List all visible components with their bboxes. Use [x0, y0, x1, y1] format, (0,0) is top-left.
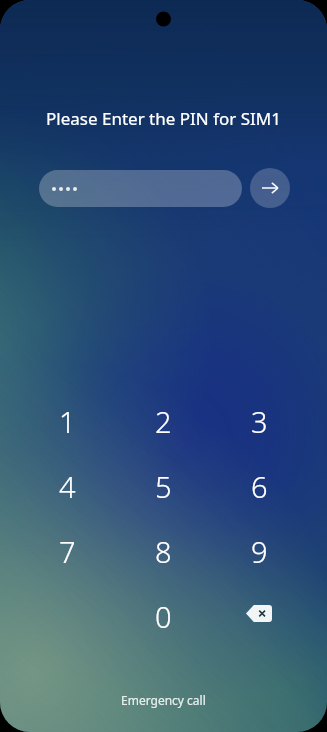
button[interactable]: 1 — [20, 402, 115, 435]
staticText: 5 — [155, 467, 172, 500]
staticText: 6 — [251, 467, 268, 500]
button[interactable] — [39, 170, 242, 207]
button[interactable]: 2 — [115, 402, 211, 435]
button[interactable]: 5 — [115, 467, 211, 500]
button[interactable]: 3 — [211, 402, 307, 435]
button[interactable]: 6 — [211, 467, 307, 500]
button[interactable]: 7 — [20, 532, 115, 565]
staticText: 0 — [155, 597, 172, 630]
staticText: 7 — [59, 532, 76, 565]
staticText: 2 — [155, 402, 172, 435]
button[interactable]: Backspace — [211, 597, 307, 630]
staticText: 3 — [251, 402, 268, 435]
staticText: 4 — [59, 467, 76, 500]
staticText: Emergency call — [121, 692, 206, 708]
button[interactable]: 8 — [115, 532, 211, 565]
button[interactable]: Emergency call — [109, 688, 218, 712]
staticText: 8 — [155, 532, 172, 565]
button[interactable]: 9 — [211, 532, 307, 565]
staticText: 9 — [251, 532, 268, 565]
staticText: 1 — [59, 402, 76, 435]
button[interactable]: 4 — [20, 467, 115, 500]
staticText: Please Enter the PIN for SIM1 — [0, 107, 327, 130]
button[interactable]: 0 — [115, 597, 211, 630]
button[interactable]: Submit PIN — [250, 168, 290, 208]
